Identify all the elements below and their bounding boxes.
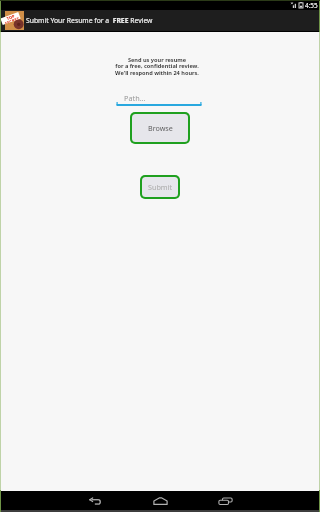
- button[interactable]: Recent apps: [209, 491, 241, 510]
- button[interactable]: Browse: [130, 112, 190, 144]
- staticText: Send us your resume for a free, confiden…: [107, 56, 207, 77]
- staticText: Path...: [124, 93, 146, 103]
- button[interactable]: Submit: [140, 175, 180, 199]
- button[interactable]: Back: [79, 491, 111, 510]
- button[interactable]: Home: [144, 491, 176, 510]
- staticText: Submit Your Resume for a FREE Review: [26, 16, 153, 25]
- staticText: TOP SECRET: [2, 12, 20, 24]
- staticText: Submit: [148, 182, 172, 192]
- staticText: Browse: [148, 123, 173, 133]
- button[interactable]: Path...: [116, 93, 202, 106]
- staticText: 4:55: [305, 1, 318, 10]
